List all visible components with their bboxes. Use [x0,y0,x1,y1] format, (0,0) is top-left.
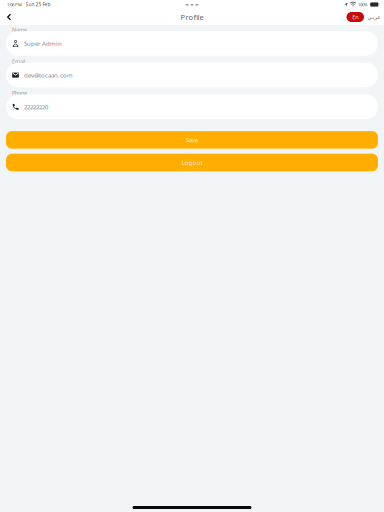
button[interactable]: Logout [6,154,378,171]
staticText: عربي [367,14,380,20]
button[interactable]: Back [2,10,16,24]
staticText: Email [12,58,25,65]
staticText: Name [12,26,27,33]
staticText: Sun 25 Feb [26,1,51,8]
staticText: dev@tocaan.com [24,71,73,79]
staticText: Logout [181,158,202,166]
staticText: Profile [180,12,203,22]
button[interactable]: En [346,12,364,22]
staticText: Super Admin [24,39,62,47]
staticText: 22222220 [24,103,48,111]
staticText: Phone [12,89,27,97]
staticText: Save [186,136,198,144]
staticText: En [352,13,358,21]
button[interactable]: Save [6,131,378,149]
button[interactable]: عربي [364,12,383,22]
staticText: 100% [358,2,368,7]
staticText: 1:08 PM [7,2,22,7]
